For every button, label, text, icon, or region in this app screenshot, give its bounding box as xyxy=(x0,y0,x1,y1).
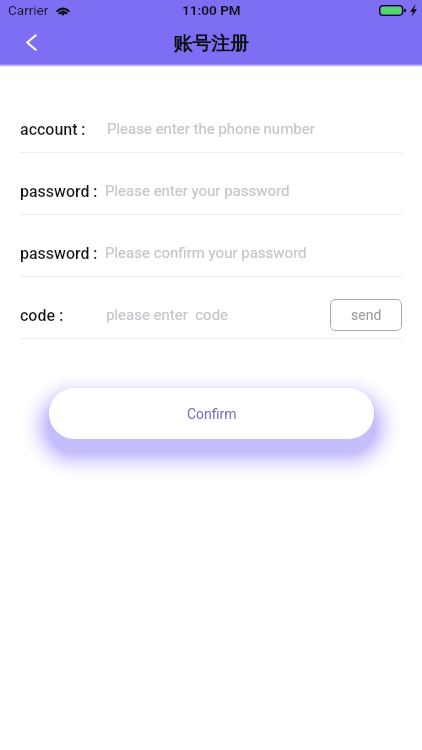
staticText: account xyxy=(20,120,78,139)
staticText: : xyxy=(81,119,86,139)
staticText: Confirm xyxy=(187,406,237,422)
staticText: code xyxy=(20,306,56,325)
staticText: Carrier xyxy=(8,2,49,18)
button[interactable]: Back xyxy=(10,21,52,63)
staticText: 11:00 PM xyxy=(182,2,241,18)
staticText: password xyxy=(20,182,90,201)
staticText: : xyxy=(93,181,98,201)
staticText: password xyxy=(20,244,90,263)
staticText: please enter code xyxy=(106,306,229,324)
staticText: Please confirm your password xyxy=(105,244,307,262)
staticText: 账号注册 xyxy=(173,32,249,56)
button[interactable]: Confirm xyxy=(49,388,374,439)
staticText: : xyxy=(59,305,64,325)
staticText: Please enter the phone number xyxy=(107,120,315,138)
staticText: send xyxy=(351,307,382,323)
staticText: : xyxy=(93,243,98,263)
button[interactable]: send xyxy=(330,299,402,331)
staticText: Please enter your password xyxy=(105,182,290,200)
